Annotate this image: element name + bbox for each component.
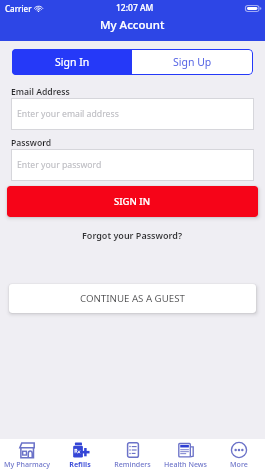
staticText: Refills xyxy=(69,459,91,469)
staticText: My Account xyxy=(100,17,165,33)
staticText: Email Address xyxy=(11,86,70,98)
staticText: Reminders xyxy=(114,459,151,469)
staticText: Enter your email address xyxy=(17,108,119,120)
button[interactable]: Forgot your Password? xyxy=(82,229,183,241)
staticText: Sign In xyxy=(55,55,90,69)
staticText: Carrier xyxy=(5,3,32,14)
button[interactable]: CONTINUE AS A GUEST xyxy=(9,284,256,313)
button[interactable]: SIGN IN xyxy=(7,186,258,217)
staticText: Password xyxy=(11,137,52,149)
staticText: Sign Up xyxy=(173,55,212,69)
button[interactable]: Refills xyxy=(53,439,106,471)
button[interactable]: My Pharmacy xyxy=(0,439,53,471)
button[interactable]: Enter your password xyxy=(17,149,248,181)
button[interactable]: Sign In xyxy=(12,49,132,75)
staticText: Enter your password xyxy=(17,159,102,171)
staticText: More xyxy=(230,459,248,469)
staticText: CONTINUE AS A GUEST xyxy=(80,292,185,305)
button[interactable]: Health News xyxy=(159,439,212,471)
staticText: SIGN IN xyxy=(114,195,151,208)
staticText: 12:07 AM xyxy=(116,2,154,14)
staticText: My Pharmacy xyxy=(4,459,50,469)
button[interactable]: Sign Up xyxy=(132,49,253,75)
button[interactable]: More xyxy=(212,439,265,471)
button[interactable]: Reminders xyxy=(106,439,159,471)
button[interactable]: Enter your email address xyxy=(17,98,248,130)
staticText: Health News xyxy=(164,459,207,469)
